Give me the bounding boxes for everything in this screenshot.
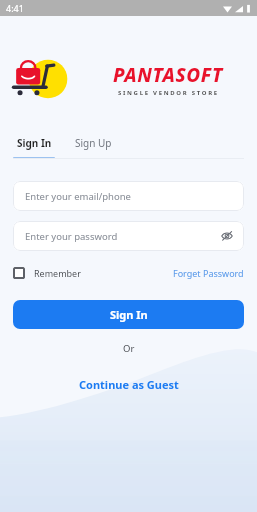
staticText: SINGLE VENDOR STORE [118,89,219,97]
staticText: Forget Password [173,267,244,279]
button[interactable]: Sign In [13,300,244,329]
button[interactable]: Forget Password [173,264,244,282]
button[interactable]: Sign Up [72,134,115,152]
staticText: Sign Up [75,136,112,150]
button[interactable]: Enter your email/phone [13,181,244,211]
button[interactable]: Continue as Guest [71,373,187,396]
staticText: PANTASOFT [113,62,223,88]
button[interactable]: Sign In [14,134,55,152]
button[interactable]: Remember [13,264,81,282]
staticText: Remember [34,267,81,279]
staticText: Enter your password [25,230,118,243]
button[interactable]: Enter your password [13,221,244,251]
button[interactable]: Show password [218,227,236,245]
staticText: Enter your email/phone [25,190,131,203]
staticText: 4:41 [6,2,24,14]
staticText: Or [123,342,135,355]
staticText: Sign In [17,136,52,150]
staticText: Sign In [110,307,148,322]
staticText: Continue as Guest [79,377,179,392]
